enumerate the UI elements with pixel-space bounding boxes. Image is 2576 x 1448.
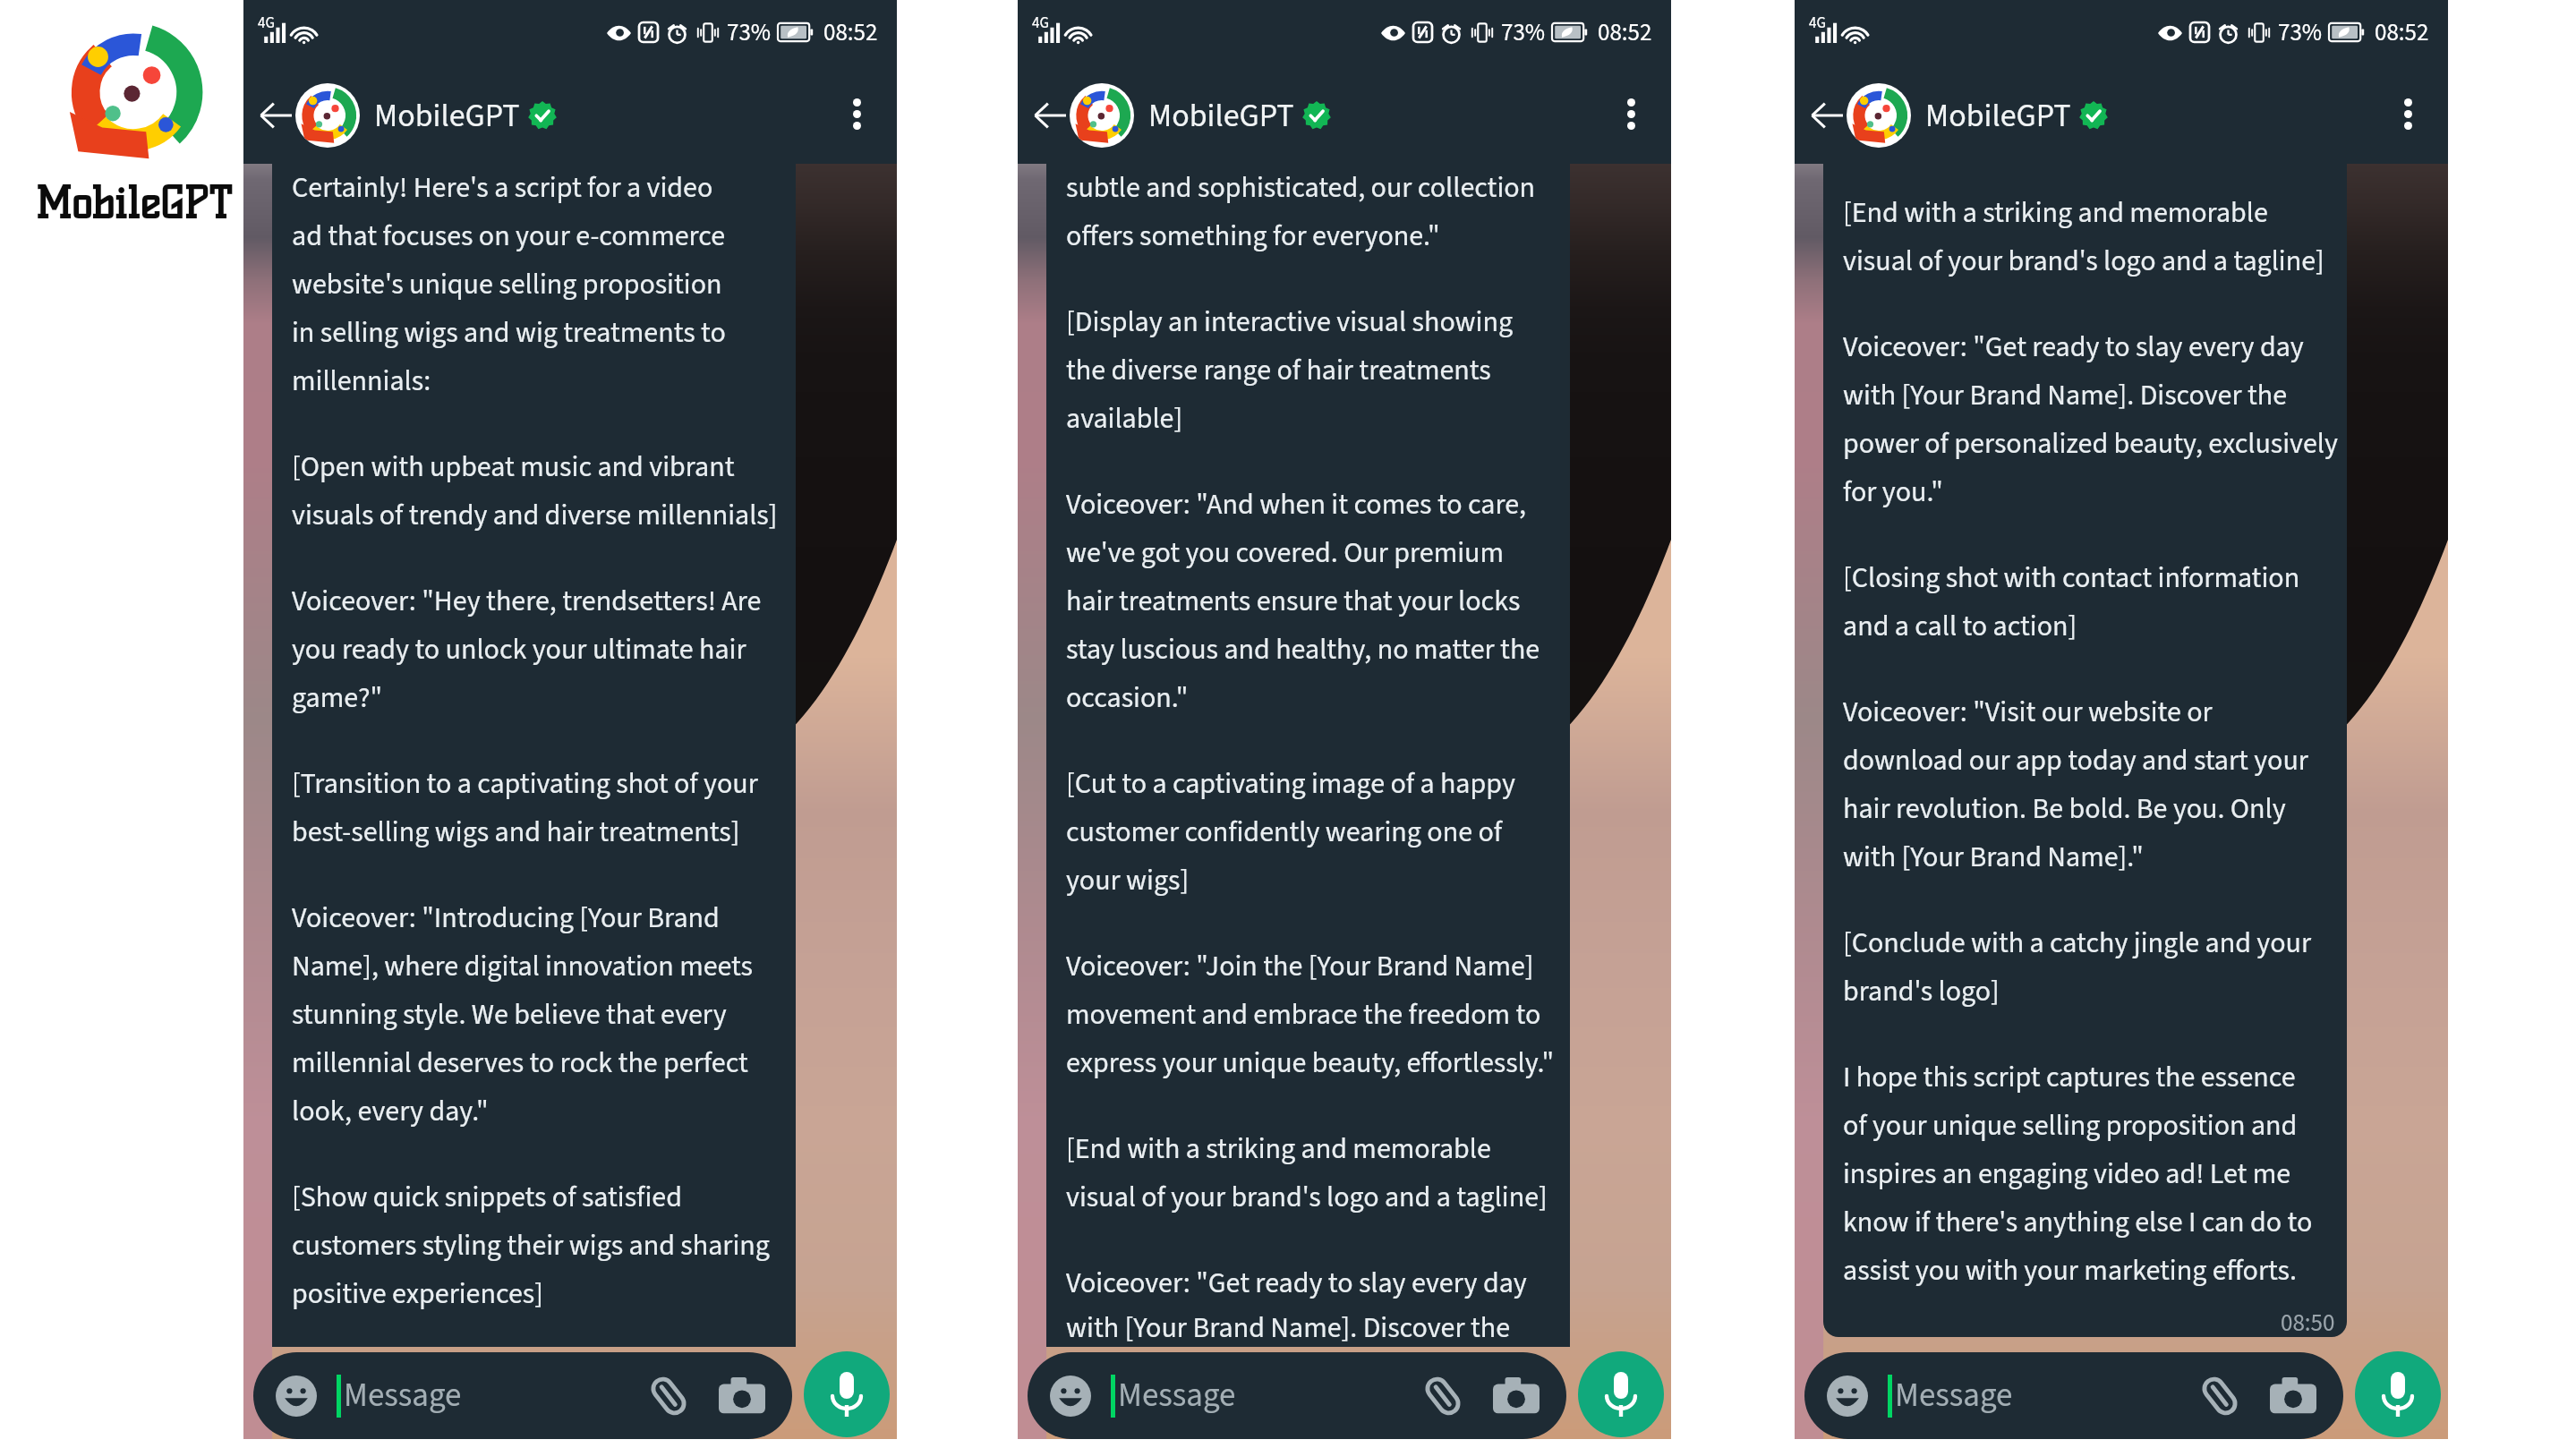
button[interactable]: Voice message <box>1578 1351 1664 1437</box>
staticText: Message <box>1895 1372 2013 1419</box>
staticText: Certainly! Here's a script for a video <box>292 167 713 209</box>
staticText: know if there's anything else I can do t… <box>1843 1202 2313 1243</box>
staticText: positive experiences] <box>292 1273 543 1315</box>
staticText: [Closing shot with contact information <box>1843 558 2300 599</box>
staticText: Voiceover: "Visit our website or <box>1843 692 2213 733</box>
staticText: 08:50 <box>2281 1306 2335 1337</box>
button[interactable]: Back <box>245 85 306 146</box>
staticText: [End with a striking and memorable <box>1843 192 2268 234</box>
staticText: of your unique selling proposition and <box>1843 1105 2298 1146</box>
staticText: Voiceover: "Get ready to slay every day <box>1066 1263 1527 1304</box>
staticText: game?" <box>292 677 383 719</box>
button[interactable]: Voice message <box>2355 1351 2441 1437</box>
staticText: millennial deserves to rock the perfect <box>292 1043 748 1084</box>
staticText: occasion." <box>1066 677 1189 719</box>
staticText: visual of your brand's logo and a taglin… <box>1843 241 2324 282</box>
button[interactable]: Camera <box>719 1377 765 1415</box>
staticText: subtle and sophisticated, our collection <box>1066 167 1536 209</box>
button[interactable]: Back <box>1019 85 1080 146</box>
button[interactable]: Emoji <box>253 1352 792 1439</box>
staticText: Message <box>1118 1372 1236 1419</box>
staticText: MobileGPT <box>1925 93 2071 139</box>
button[interactable]: Attach file <box>2199 1376 2240 1417</box>
staticText: millennials: <box>292 361 431 402</box>
staticText: inspires an engaging video ad! Let me <box>1843 1154 2291 1195</box>
button[interactable]: Voice message <box>804 1351 890 1437</box>
button[interactable]: MobileGPT <box>1847 67 2108 164</box>
staticText: 08:52 <box>1598 15 1652 49</box>
staticText: MobileGPT <box>374 93 520 139</box>
staticText: stunning style. We believe that every <box>292 994 727 1035</box>
staticText: I hope this script captures the essence <box>1843 1057 2296 1098</box>
staticText: [Display an interactive visual showing <box>1066 302 1514 343</box>
staticText: with [Your Brand Name]. Discover the <box>1066 1307 1511 1347</box>
staticText: 4G <box>258 13 275 34</box>
staticText: download our app today and start your <box>1843 740 2308 781</box>
staticText: Name], where digital innovation meets <box>292 946 753 987</box>
staticText: visuals of trendy and diverse millennial… <box>292 495 778 536</box>
staticText: express your unique beauty, effortlessly… <box>1066 1043 1555 1084</box>
staticText: available] <box>1066 398 1183 439</box>
button[interactable]: Camera <box>2270 1377 2316 1415</box>
button[interactable]: Emoji <box>1050 1376 1091 1417</box>
staticText: MobileGPT <box>35 177 232 229</box>
staticText: ad that focuses on your e-commerce <box>292 216 726 257</box>
staticText: 73% <box>727 15 772 49</box>
staticText: best-selling wigs and hair treatments] <box>292 812 740 853</box>
staticText: we've got you covered. Our premium <box>1066 532 1505 574</box>
button[interactable]: Emoji <box>1804 1352 2343 1439</box>
staticText: offers something for everyone." <box>1066 216 1440 257</box>
staticText: MobileGPT <box>1148 93 1294 139</box>
staticText: look, every day." <box>292 1091 489 1132</box>
staticText: 4G <box>1809 13 1826 34</box>
button[interactable]: MobileGPT <box>1070 67 1331 164</box>
staticText: [Show quick snippets of satisfied <box>292 1177 682 1218</box>
staticText: 08:52 <box>823 15 878 49</box>
staticText: 08:52 <box>2375 15 2429 49</box>
staticText: movement and embrace the freedom to <box>1066 994 1541 1035</box>
button[interactable]: More options <box>1601 84 1660 143</box>
staticText: power of personalized beauty, exclusivel… <box>1843 423 2338 464</box>
staticText: [Open with upbeat music and vibrant <box>292 447 735 488</box>
staticText: Voiceover: "Introducing [Your Brand <box>292 898 720 939</box>
staticText: customers styling their wigs and sharing <box>292 1225 770 1266</box>
button[interactable]: Emoji <box>1827 1376 1868 1417</box>
staticText: website's unique selling proposition <box>292 264 722 305</box>
staticText: with [Your Brand Name]. Discover the <box>1843 375 2288 416</box>
staticText: hair treatments ensure that your locks <box>1066 581 1521 622</box>
staticText: Voiceover: "Hey there, trendsetters! Are <box>292 581 762 622</box>
staticText: [Conclude with a catchy jingle and your <box>1843 923 2312 964</box>
staticText: with [Your Brand Name]." <box>1843 837 2144 878</box>
staticText: Voiceover: "And when it comes to care, <box>1066 484 1527 525</box>
staticText: brand's logo] <box>1843 971 2000 1012</box>
staticText: [Cut to a captivating image of a happy <box>1066 763 1515 805</box>
button[interactable]: Emoji <box>276 1376 317 1417</box>
staticText: stay luscious and healthy, no matter the <box>1066 629 1540 670</box>
button[interactable]: Attach file <box>648 1376 689 1417</box>
button[interactable]: Emoji <box>1028 1352 1566 1439</box>
button[interactable]: Attach file <box>1422 1376 1463 1417</box>
staticText: visual of your brand's logo and a taglin… <box>1066 1177 1548 1218</box>
button[interactable]: Back <box>1796 85 1857 146</box>
button[interactable]: More options <box>2378 84 2437 143</box>
staticText: 73% <box>1501 15 1546 49</box>
staticText: Message <box>344 1372 462 1419</box>
staticText: 4G <box>1032 13 1049 34</box>
staticText: [End with a striking and memorable <box>1066 1129 1491 1170</box>
staticText: in selling wigs and wig treatments to <box>292 312 726 353</box>
staticText: the diverse range of hair treatments <box>1066 350 1491 391</box>
staticText: and a call to action] <box>1843 606 2077 647</box>
staticText: for you." <box>1843 472 1943 513</box>
staticText: Voiceover: "Join the [Your Brand Name] <box>1066 946 1534 987</box>
staticText: customer confidently wearing one of <box>1066 812 1503 853</box>
staticText: 73% <box>2278 15 2323 49</box>
button[interactable]: Camera <box>1493 1377 1540 1415</box>
staticText: Voiceover: "Get ready to slay every day <box>1843 327 2304 368</box>
staticText: assist you with your marketing efforts. <box>1843 1250 2297 1291</box>
button[interactable]: More options <box>827 84 886 143</box>
button[interactable]: MobileGPT <box>295 67 557 164</box>
staticText: your wigs] <box>1066 860 1190 901</box>
staticText: [Transition to a captivating shot of you… <box>292 763 758 805</box>
staticText: hair revolution. Be bold. Be you. Only <box>1843 788 2286 830</box>
staticText: you ready to unlock your ultimate hair <box>292 629 746 670</box>
